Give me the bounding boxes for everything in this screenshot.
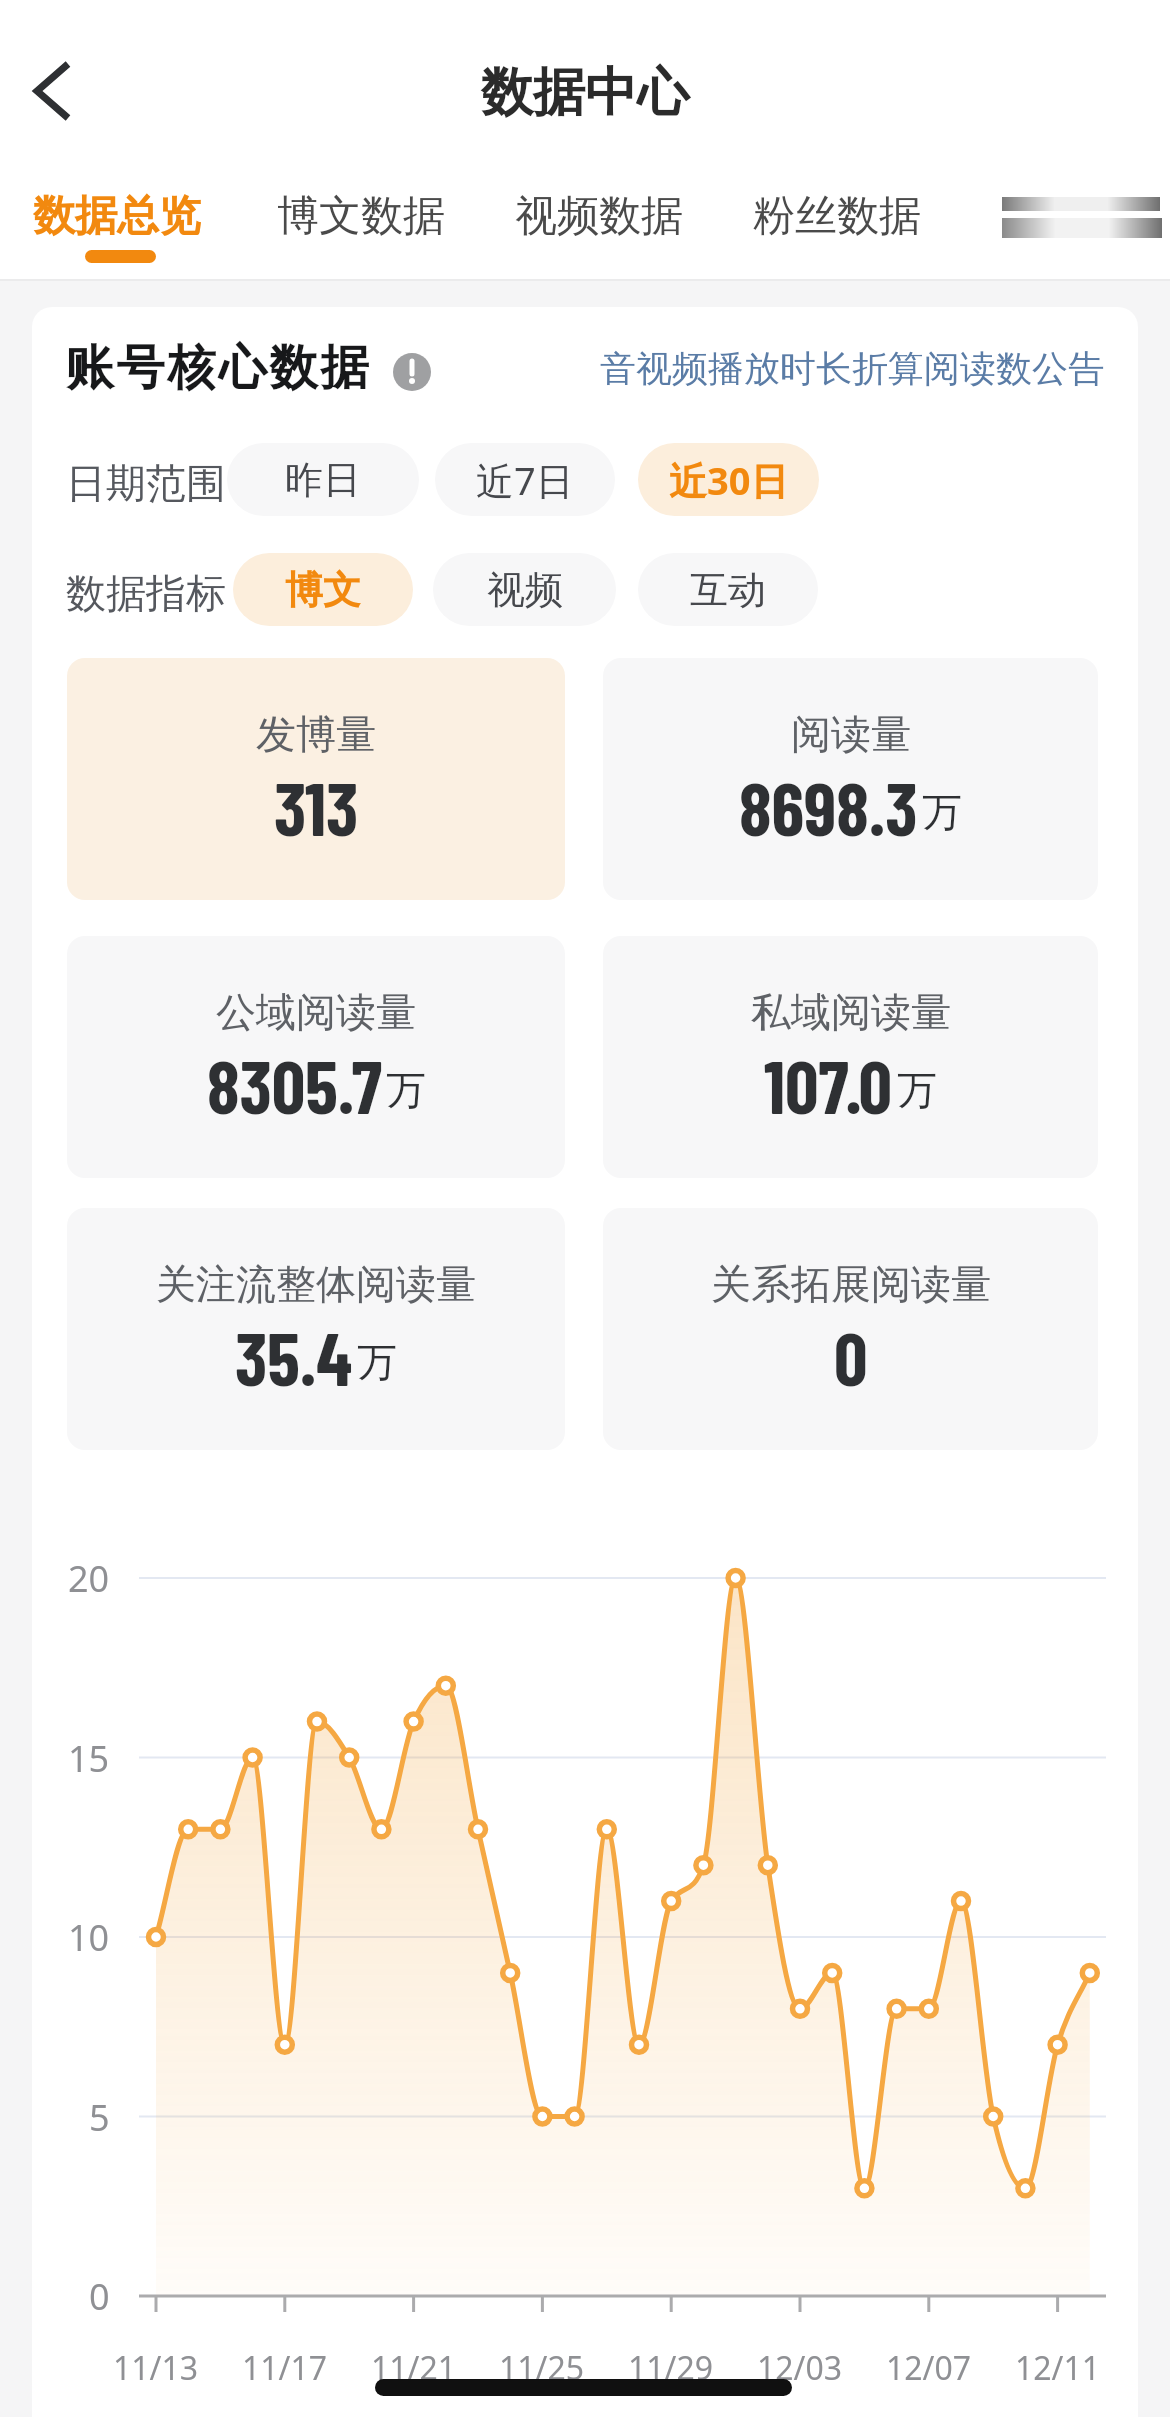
button[interactable]: 视频	[433, 553, 616, 626]
staticText: 10	[68, 1913, 110, 1962]
button[interactable]: 公域阅读量	[67, 936, 565, 1178]
staticText: 数据总览	[33, 190, 201, 243]
staticText: 音视频播放时长折算阅读数公告	[600, 346, 1104, 391]
staticText: 近7日	[476, 454, 574, 506]
staticText: 万	[386, 1065, 426, 1115]
staticText: 15	[68, 1734, 110, 1783]
staticText: 12/03	[757, 2346, 843, 2390]
button[interactable]: 发博量	[67, 658, 565, 900]
staticText: 万	[897, 1065, 937, 1115]
button[interactable]: 互动	[638, 553, 818, 626]
button[interactable]: 近30日	[638, 443, 819, 516]
staticText: 11/21	[371, 2346, 457, 2390]
staticText: 视频	[487, 566, 563, 614]
staticText: 粉丝数据	[753, 190, 921, 243]
button[interactable]: 博文	[233, 553, 413, 626]
staticText: 万	[357, 1337, 397, 1387]
staticText: 107.0	[764, 1040, 893, 1129]
button[interactable]: 阅读量	[603, 658, 1098, 900]
staticText: 20	[68, 1554, 110, 1603]
button[interactable]	[20, 55, 90, 127]
staticText: 313	[274, 762, 359, 851]
staticText: 公域阅读量	[216, 987, 416, 1037]
staticText: 私域阅读量	[751, 987, 951, 1037]
staticText: 关注流整体阅读量	[156, 1259, 476, 1309]
staticText: 5	[89, 2093, 110, 2142]
staticText: 11/29	[628, 2346, 714, 2390]
staticText: 数据指标	[66, 568, 226, 618]
staticText: 11/17	[242, 2346, 328, 2390]
staticText: 数据中心	[481, 60, 689, 126]
staticText: 互动	[690, 566, 766, 614]
button[interactable]: 音视频播放时长折算阅读数公告	[560, 340, 1104, 396]
button[interactable]: 粉丝数据	[742, 185, 932, 247]
staticText: 近30日	[669, 454, 789, 506]
button[interactable]: 昨日	[227, 443, 419, 516]
staticText: 11/13	[113, 2346, 199, 2390]
button[interactable]: 关系拓展阅读量	[603, 1208, 1098, 1450]
button[interactable]: 近7日	[435, 443, 615, 516]
button[interactable]: 视频数据	[504, 185, 694, 247]
staticText: 8698.3	[739, 762, 918, 851]
staticText: 万	[922, 787, 962, 837]
button[interactable]: 数据总览	[22, 185, 212, 247]
button[interactable]: 私域阅读量	[603, 936, 1098, 1178]
staticText: 视频数据	[515, 190, 683, 243]
staticText: 昨日	[285, 456, 361, 504]
staticText: 8305.7	[207, 1040, 382, 1129]
staticText: 35.4	[235, 1312, 353, 1401]
staticText: 博文	[285, 566, 361, 614]
button[interactable]: 关注流整体阅读量	[67, 1208, 565, 1450]
staticText: 发博量	[256, 709, 376, 759]
button[interactable]: 博文数据	[266, 185, 456, 247]
staticText: 12/11	[1015, 2346, 1101, 2390]
staticText: 0	[89, 2272, 110, 2321]
staticText: 11/25	[499, 2346, 585, 2390]
staticText: 0	[834, 1312, 868, 1401]
staticText: 12/07	[886, 2346, 972, 2390]
staticText: 日期范围	[66, 458, 226, 508]
staticText: 账号核心数据	[64, 338, 370, 398]
staticText: 阅读量	[791, 709, 911, 759]
staticText: 关系拓展阅读量	[711, 1259, 991, 1309]
staticText: 博文数据	[277, 190, 445, 243]
